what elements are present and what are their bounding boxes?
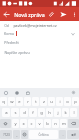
- button[interactable]: Shift: [0, 119, 11, 128]
- staticText: j: [57, 110, 59, 116]
- button[interactable]: h: [46, 108, 53, 117]
- button[interactable]: r: [24, 97, 31, 106]
- button[interactable]: a: [2, 108, 10, 117]
- staticText: l: [73, 110, 75, 116]
- staticText: m: [62, 121, 66, 127]
- button[interactable]: w: [8, 97, 15, 106]
- staticText: u: [50, 99, 53, 105]
- button[interactable]: Emotikony: [21, 130, 28, 139]
- staticText: Komu: [4, 31, 14, 36]
- button[interactable]: m: [60, 119, 67, 128]
- staticText: ,: [16, 132, 18, 137]
- button[interactable]: Čeština: [29, 130, 58, 139]
- staticText: Od: [4, 23, 9, 28]
- button[interactable]: c: [28, 119, 35, 128]
- button[interactable]: b: [44, 119, 51, 128]
- button[interactable]: y: [12, 119, 19, 128]
- button[interactable]: Smazat: [68, 119, 79, 128]
- staticText: Předmět: [4, 40, 19, 45]
- button[interactable]: g: [38, 108, 45, 117]
- button[interactable]: Emotikony: [13, 89, 20, 96]
- button[interactable]: d: [20, 108, 28, 117]
- button[interactable]: Zpět: [0, 8, 13, 21]
- button[interactable]: i: [56, 97, 63, 106]
- staticText: n: [54, 121, 57, 127]
- button[interactable]: Komu: [0, 29, 79, 38]
- staticText: w: [10, 99, 14, 105]
- staticText: o: [66, 99, 69, 105]
- staticText: s: [14, 110, 17, 116]
- staticText: k: [64, 110, 67, 116]
- button[interactable]: j: [54, 108, 61, 117]
- button[interactable]: k: [62, 108, 69, 117]
- button[interactable]: q: [0, 97, 7, 106]
- button[interactable]: ?123: [0, 130, 12, 139]
- staticText: f: [32, 110, 34, 116]
- staticText: a: [5, 110, 8, 116]
- button[interactable]: ,: [13, 130, 20, 139]
- button[interactable]: Nastavení klávesnice: [70, 89, 77, 96]
- button[interactable]: o: [64, 97, 71, 106]
- staticText: Napište zprávu: [4, 50, 30, 55]
- staticText: Nová zpráva: [14, 11, 45, 18]
- button[interactable]: Předmět: [0, 38, 79, 47]
- button[interactable]: Google: [2, 89, 9, 96]
- staticText: v: [38, 121, 41, 127]
- staticText: e: [18, 99, 21, 105]
- staticText: b: [46, 121, 49, 127]
- button[interactable]: x: [20, 119, 27, 128]
- staticText: x: [22, 121, 25, 127]
- button[interactable]: e: [16, 97, 23, 106]
- button[interactable]: Odeslat: [57, 8, 69, 20]
- button[interactable]: l: [70, 108, 77, 117]
- button[interactable]: Další možnosti: [69, 9, 79, 19]
- button[interactable]: Přiložit soubor: [45, 8, 57, 20]
- staticText: pavlicek@mojeinternet.cz: [13, 23, 57, 28]
- staticText: c: [30, 121, 33, 127]
- staticText: .: [62, 132, 64, 137]
- button[interactable]: f: [29, 108, 37, 117]
- staticText: y: [14, 121, 17, 127]
- staticText: h: [48, 110, 51, 116]
- button[interactable]: p: [72, 97, 79, 106]
- staticText: r: [27, 99, 29, 105]
- staticText: Čeština: [38, 133, 49, 137]
- button[interactable]: z: [40, 97, 47, 106]
- button[interactable]: Napište zprávu: [0, 47, 79, 59]
- staticText: p: [74, 99, 77, 105]
- staticText: t: [35, 99, 37, 105]
- staticText: g: [40, 110, 43, 116]
- button[interactable]: n: [52, 119, 59, 128]
- button[interactable]: Od: [0, 21, 79, 29]
- button[interactable]: v: [36, 119, 43, 128]
- staticText: i: [59, 99, 61, 105]
- staticText: ?123: [3, 133, 10, 137]
- button[interactable]: GIF: [24, 89, 31, 96]
- staticText: d: [23, 110, 26, 116]
- button[interactable]: u: [48, 97, 55, 106]
- staticText: z: [43, 99, 45, 105]
- button[interactable]: t: [32, 97, 39, 106]
- button[interactable]: s: [11, 108, 19, 117]
- staticText: q: [2, 99, 5, 105]
- button[interactable]: Enter: [67, 130, 79, 139]
